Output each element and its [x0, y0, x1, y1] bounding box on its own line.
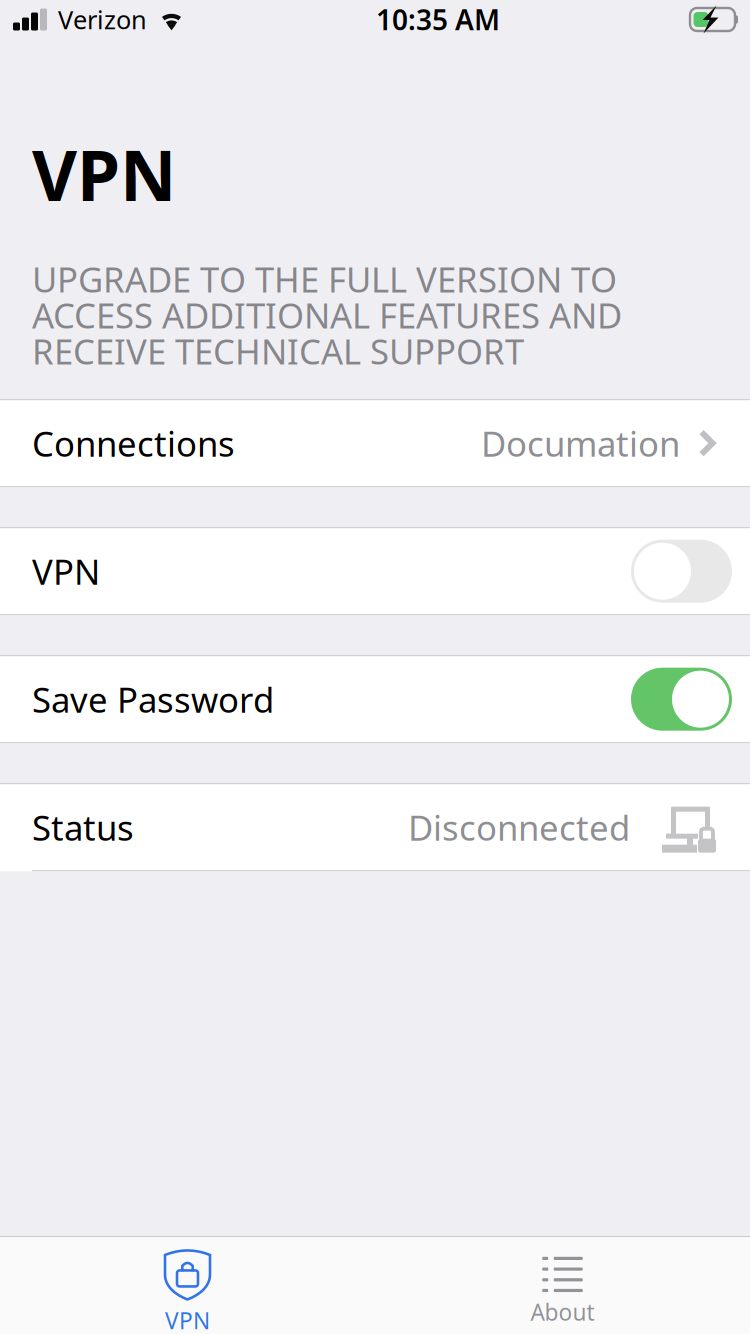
staticText: Verizon	[58, 3, 147, 36]
staticText: Documation	[481, 420, 680, 466]
staticText: VPN	[32, 548, 100, 594]
button[interactable]: Connections	[0, 399, 750, 487]
staticText: Disconnected	[408, 804, 630, 850]
button[interactable]: About	[375, 1240, 750, 1330]
staticText: Status	[32, 804, 134, 850]
staticText: Connections	[32, 420, 235, 466]
staticText: VPN	[165, 1305, 210, 1334]
staticText: 10:35 AM	[376, 1, 500, 38]
staticText: About	[530, 1297, 594, 1327]
button[interactable]: Save Password	[0, 655, 750, 743]
button[interactable]: VPN	[0, 527, 750, 615]
button[interactable]: VPN	[0, 1231, 375, 1334]
staticText: Save Password	[32, 676, 274, 722]
staticText: VPN	[32, 128, 176, 220]
staticText: UPGRADE TO THE FULL VERSION TO ACCESS AD…	[32, 256, 622, 374]
